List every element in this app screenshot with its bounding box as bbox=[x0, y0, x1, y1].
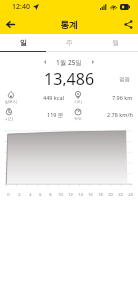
staticText: 통계 bbox=[60, 19, 78, 30]
staticText: 24 bbox=[128, 192, 133, 197]
staticText: 13,486 bbox=[44, 68, 95, 86]
staticText: 월 bbox=[112, 38, 119, 47]
button[interactable]: 거리 bbox=[69, 89, 138, 106]
button[interactable]: 일 bbox=[0, 34, 46, 51]
staticText: 7.96 km bbox=[112, 94, 133, 101]
staticText: 10 bbox=[58, 192, 63, 197]
staticText: 22 bbox=[118, 192, 123, 197]
staticText: 119 분 bbox=[47, 111, 64, 119]
staticText: 2 bbox=[18, 192, 21, 197]
button[interactable]: Back bbox=[0, 14, 20, 34]
staticText: 14 bbox=[78, 192, 83, 197]
button[interactable]: Share bbox=[118, 14, 138, 34]
staticText: 12:40 bbox=[12, 2, 30, 12]
button[interactable]: Previous day bbox=[39, 56, 51, 68]
staticText: 시간 bbox=[5, 116, 13, 121]
staticText: 8 bbox=[49, 192, 52, 197]
staticText: 일 bbox=[20, 38, 27, 47]
button[interactable]: 칼로리 bbox=[0, 89, 69, 106]
staticText: 4 bbox=[29, 192, 32, 197]
button[interactable]: 월 bbox=[92, 34, 138, 51]
staticText: 449 kcal bbox=[43, 94, 64, 101]
staticText: 0 bbox=[7, 192, 10, 197]
button[interactable]: 속도 bbox=[69, 106, 138, 123]
button[interactable]: Next day bbox=[87, 56, 99, 68]
staticText: 주 bbox=[66, 38, 73, 47]
button[interactable]: 주 bbox=[46, 34, 92, 51]
staticText: 6 bbox=[39, 192, 42, 197]
button[interactable]: 0 bbox=[0, 125, 138, 199]
staticText: 걸음 bbox=[119, 76, 130, 83]
staticText: 16 bbox=[88, 192, 93, 197]
staticText: 1월 25일 bbox=[56, 58, 82, 67]
staticText: 18 bbox=[98, 192, 103, 197]
button[interactable]: 시간 bbox=[0, 106, 69, 123]
staticText: 칼로리 bbox=[5, 99, 17, 104]
staticText: 12 bbox=[68, 192, 73, 197]
staticText: 20 bbox=[108, 192, 113, 197]
staticText: 2.78 km/h bbox=[107, 111, 133, 118]
staticText: 속도 bbox=[74, 116, 82, 121]
staticText: 거리 bbox=[74, 99, 82, 104]
